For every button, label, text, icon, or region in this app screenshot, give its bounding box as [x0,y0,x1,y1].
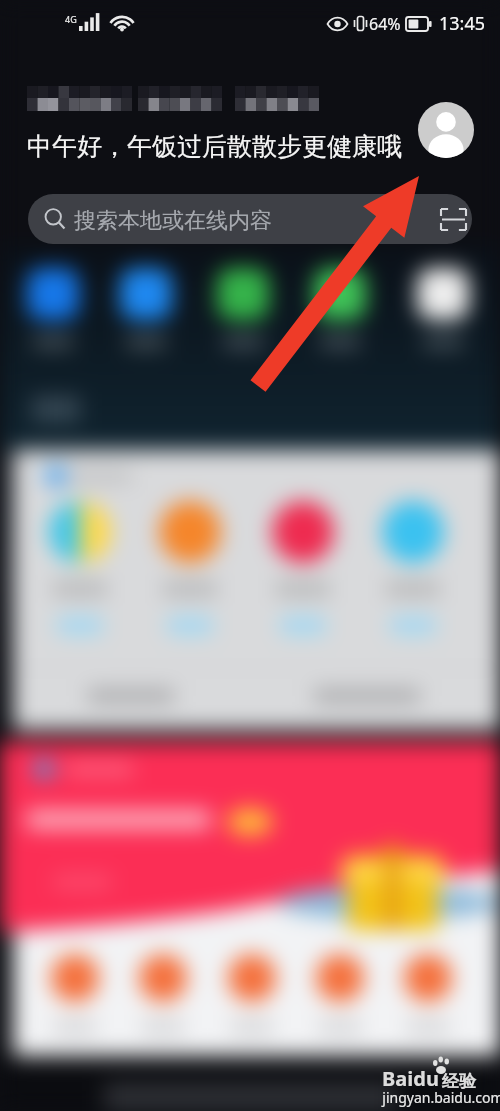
button[interactable] [13,450,500,730]
button[interactable] [279,617,327,634]
button[interactable] [217,268,269,320]
button[interactable] [120,268,172,320]
button[interactable] [228,954,276,1002]
staticText: 4G [65,13,77,25]
staticText: 64% [369,13,401,35]
button[interactable] [166,617,214,634]
button[interactable]: Profile [418,102,474,158]
staticText: jingyan.baidu.com [382,1088,500,1107]
button[interactable]: Scan [433,194,472,244]
staticText: 经验 [442,1071,476,1092]
button[interactable] [51,954,99,1002]
staticText: 中午好，午饭过后散散步更健康哦 [27,131,402,162]
staticText: Baidu [382,1065,439,1092]
button[interactable] [417,268,469,320]
button[interactable] [389,617,437,634]
button[interactable] [316,954,364,1002]
button[interactable] [314,268,366,320]
button[interactable] [139,954,187,1002]
button[interactable] [404,954,452,1002]
button[interactable]: 搜索本地或在线内容 [28,194,472,244]
staticText: 13:45 [439,11,486,36]
button[interactable] [0,742,500,1056]
button[interactable] [56,617,104,634]
staticText: 搜索本地或在线内容 [74,207,272,235]
button[interactable] [27,268,79,320]
